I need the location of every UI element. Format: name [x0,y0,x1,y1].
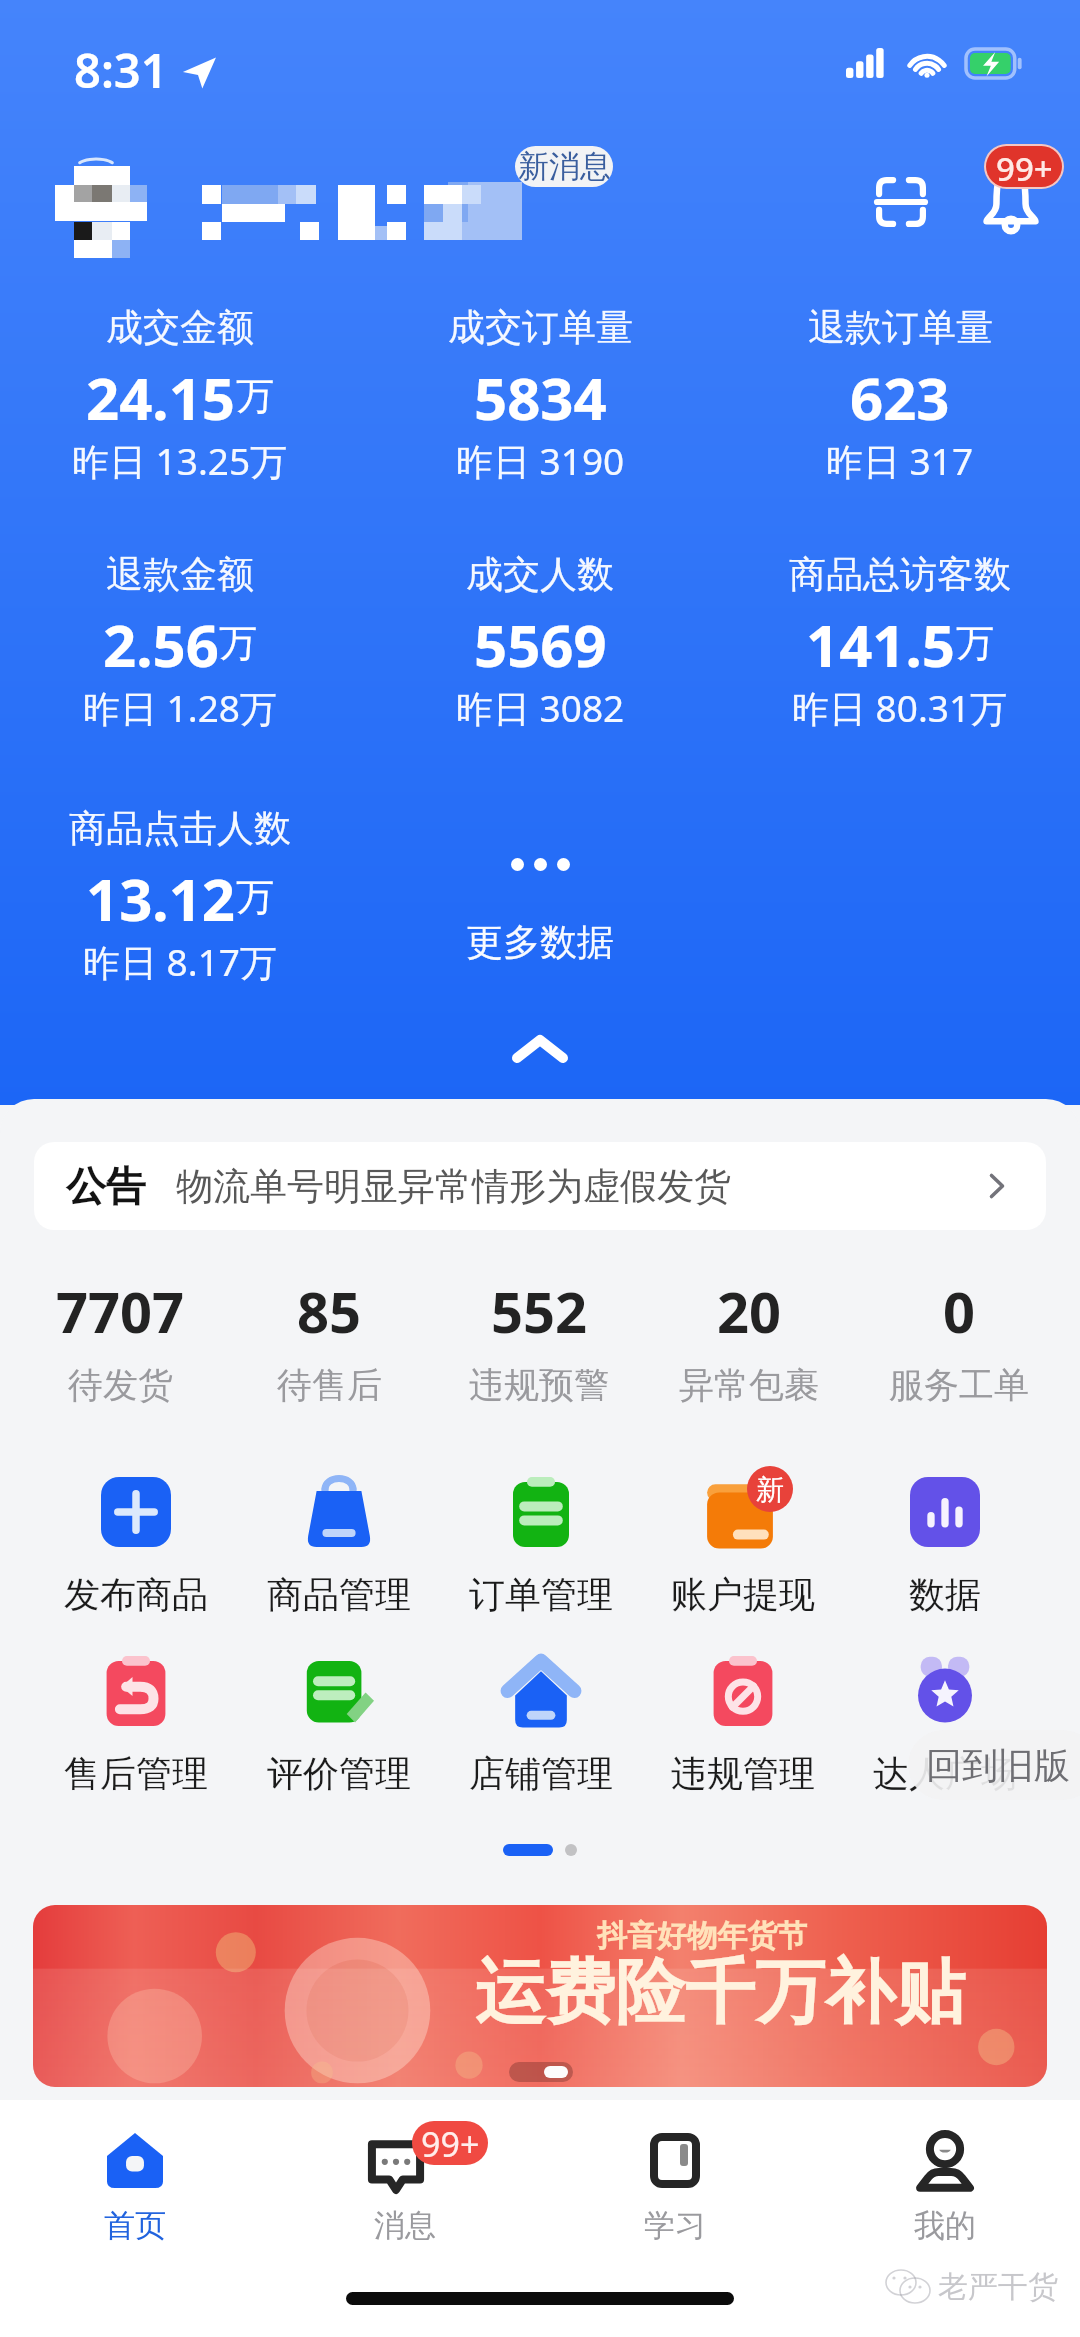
staticText: 店铺管理 [469,1751,613,1796]
staticText: 老严干货 [938,2268,1058,2306]
button[interactable] [200,180,522,244]
staticText: 账户提现 [671,1572,815,1617]
button[interactable]: 回到旧版 [908,1730,1080,1800]
button[interactable]: Shop avatar [54,160,150,260]
staticText: 首页 [104,2206,166,2245]
button[interactable]: 7707 [16,1273,225,1407]
staticText: 商品总访客数 [789,551,1011,598]
button[interactable]: Scan [856,157,946,247]
staticText: 万 [956,619,994,667]
staticText: 更多数据 [466,919,614,966]
button[interactable]: 我的 [810,2122,1080,2245]
staticText: 5569 [474,605,607,669]
staticText: 违规管理 [671,1751,815,1796]
staticText: 我的 [914,2206,976,2245]
staticText: 24.15 [86,358,236,422]
staticText: 5834 [474,358,607,422]
staticText: 昨日 3082 [456,682,625,733]
button[interactable]: 违规管理 [642,1653,844,1796]
staticText: 成交金额 [106,304,254,351]
staticText: 成交订单量 [448,304,633,351]
staticText: 万 [236,372,274,420]
staticText: 2.56 [103,605,219,669]
button[interactable]: 发布商品 [34,1474,237,1617]
staticText: 552 [491,1273,588,1349]
staticText: 万 [236,873,274,921]
button[interactable]: 公告 [34,1142,1046,1230]
button[interactable]: 抖音好物年货节 [33,1905,1047,2087]
staticText: 13.12 [86,859,236,923]
button[interactable]: 0 [854,1273,1064,1407]
staticText: 141.5 [806,605,956,669]
staticText: 服务工单 [889,1363,1029,1407]
staticText: 售后管理 [64,1751,208,1796]
staticText: 违规预警 [469,1363,609,1407]
button[interactable]: 达人广场 [844,1653,1046,1796]
staticText: 异常包裹 [679,1363,819,1407]
staticText: 20 [717,1273,782,1349]
button[interactable]: 售后管理 [34,1653,237,1796]
staticText: 订单管理 [469,1572,613,1617]
staticText: 抖音好物年货节 [597,1917,807,1955]
staticText: 成交人数 [466,551,614,598]
staticText: 达人广场 [873,1751,1017,1796]
button[interactable]: 成交人数 [360,543,720,743]
button[interactable]: 学习 [540,2122,810,2245]
button[interactable]: 退款订单量 [720,296,1080,496]
button[interactable]: Collapse [492,1014,588,1084]
button[interactable]: 商品总访客数 [720,543,1080,743]
staticText: 万 [219,619,257,667]
staticText: 昨日 80.31万 [792,682,1008,733]
staticText: 7707 [56,1273,185,1349]
button[interactable]: 成交订单量 [360,296,720,496]
button[interactable]: Notifications [965,148,1057,240]
staticText: 623 [850,358,950,422]
staticText: 数据 [909,1572,981,1617]
staticText: 待售后 [277,1363,382,1407]
staticText: 99+ [996,146,1053,187]
button[interactable]: 20 [644,1273,854,1407]
staticText: 新消息 [518,147,611,186]
staticText: 发布商品 [64,1572,208,1617]
staticText: 消息 [374,2206,436,2245]
button[interactable]: 商品点击人数 [0,797,360,997]
staticText: 学习 [644,2206,706,2245]
staticText: 商品点击人数 [69,805,291,852]
staticText: 公告 [66,1161,146,1211]
staticText: 昨日 3190 [456,435,625,486]
staticText: 评价管理 [267,1751,411,1796]
button[interactable]: 新 [642,1474,844,1617]
button[interactable]: 退款金额 [0,543,360,743]
staticText: 退款金额 [106,551,254,598]
staticText: 昨日 317 [826,435,974,486]
button[interactable]: 首页 [0,2122,270,2245]
staticText: 0 [943,1273,976,1349]
staticText: 99+ [421,2121,480,2165]
staticText: 运费险千万补贴 [475,1949,965,2037]
staticText: 退款订单量 [808,304,993,351]
staticText: 昨日 8.17万 [83,936,278,987]
staticText: 85 [297,1273,362,1349]
button[interactable]: 新消息 [515,146,613,187]
staticText: 商品管理 [267,1572,411,1617]
button[interactable]: 数据 [844,1474,1046,1617]
button[interactable]: 更多数据 [360,797,720,997]
staticText: 昨日 1.28万 [83,682,278,733]
staticText: 新 [756,1472,784,1507]
button[interactable]: 成交金额 [0,296,360,496]
button[interactable]: 552 [434,1273,644,1407]
staticText: 回到旧版 [926,1743,1070,1788]
staticText: 物流单号明显异常情形为虚假发货 [176,1163,731,1210]
button[interactable]: 订单管理 [440,1474,642,1617]
button[interactable]: 85 [225,1273,434,1407]
button[interactable]: 商品管理 [237,1474,440,1617]
staticText: 昨日 13.25万 [72,435,288,486]
button[interactable]: 99+ [270,2122,540,2245]
staticText: 待发货 [68,1363,173,1407]
staticText: 8:31 [74,38,168,102]
button[interactable]: 店铺管理 [440,1653,642,1796]
button[interactable]: 评价管理 [237,1653,440,1796]
